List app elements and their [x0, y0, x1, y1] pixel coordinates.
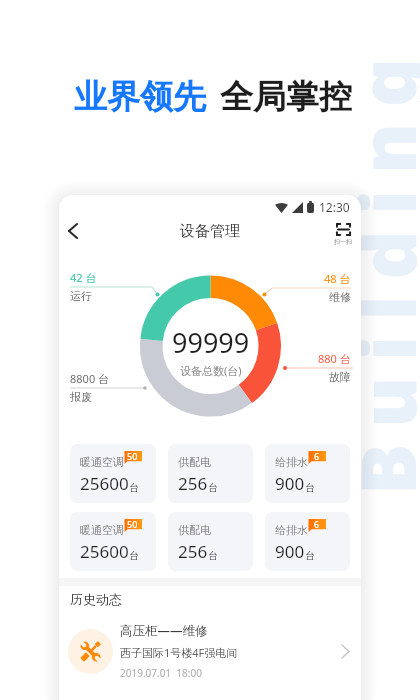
- staticText: 25600: [80, 472, 129, 495]
- staticText: 业界领先: [74, 76, 206, 118]
- staticText: 50: [127, 450, 138, 462]
- staticText: 台: [129, 481, 139, 494]
- staticText: 供配电: [178, 523, 211, 537]
- staticText: 维修: [329, 290, 351, 304]
- staticText: 12:30: [319, 199, 350, 215]
- staticText: 暖通空调: [80, 523, 124, 537]
- staticText: 50: [127, 518, 138, 530]
- button[interactable]: Back: [60, 218, 86, 244]
- staticText: 8800 台: [70, 371, 110, 386]
- button[interactable]: 给排水: [265, 444, 350, 503]
- button[interactable]: 高压柜——维修: [59, 620, 361, 682]
- staticText: 99999: [172, 324, 250, 361]
- staticText: 台: [129, 549, 139, 562]
- staticText: 暖通空调: [80, 455, 124, 469]
- button[interactable]: Scan QR code: [334, 223, 352, 246]
- staticText: 设备总数(台): [180, 363, 242, 378]
- staticText: 台: [305, 549, 315, 562]
- button[interactable]: 供配电: [168, 512, 253, 571]
- staticText: 6: [314, 518, 320, 530]
- staticText: 设备管理: [180, 222, 240, 241]
- staticText: 台: [305, 481, 315, 494]
- staticText: 故障: [329, 370, 351, 384]
- staticText: 900: [275, 540, 305, 563]
- staticText: 42 台: [70, 270, 97, 285]
- staticText: 报废: [70, 390, 92, 404]
- staticText: 西子国际1号楼4F强电间: [120, 645, 238, 660]
- staticText: 6: [314, 450, 320, 462]
- button[interactable]: 供配电: [168, 444, 253, 503]
- staticText: 给排水: [275, 523, 308, 537]
- staticText: 台: [208, 481, 218, 494]
- staticText: 256: [178, 472, 208, 495]
- staticText: 2019.07.01 18:00: [120, 666, 202, 680]
- staticText: 25600: [80, 540, 129, 563]
- staticText: 48 台: [324, 271, 351, 286]
- staticText: 台: [208, 549, 218, 562]
- staticText: 给排水: [275, 455, 308, 469]
- staticText: 扫一扫: [334, 238, 352, 246]
- staticText: 880 台: [318, 351, 351, 366]
- staticText: 运行: [70, 289, 92, 303]
- staticText: 历史动态: [70, 591, 122, 607]
- staticText: 供配电: [178, 455, 211, 469]
- staticText: 256: [178, 540, 208, 563]
- staticText: 高压柜——维修: [120, 622, 208, 639]
- button[interactable]: 暖通空调: [70, 512, 156, 571]
- button[interactable]: 暖通空调: [70, 444, 156, 503]
- button[interactable]: 给排水: [265, 512, 350, 571]
- staticText: 全局掌控: [220, 76, 352, 118]
- staticText: 900: [275, 472, 305, 495]
